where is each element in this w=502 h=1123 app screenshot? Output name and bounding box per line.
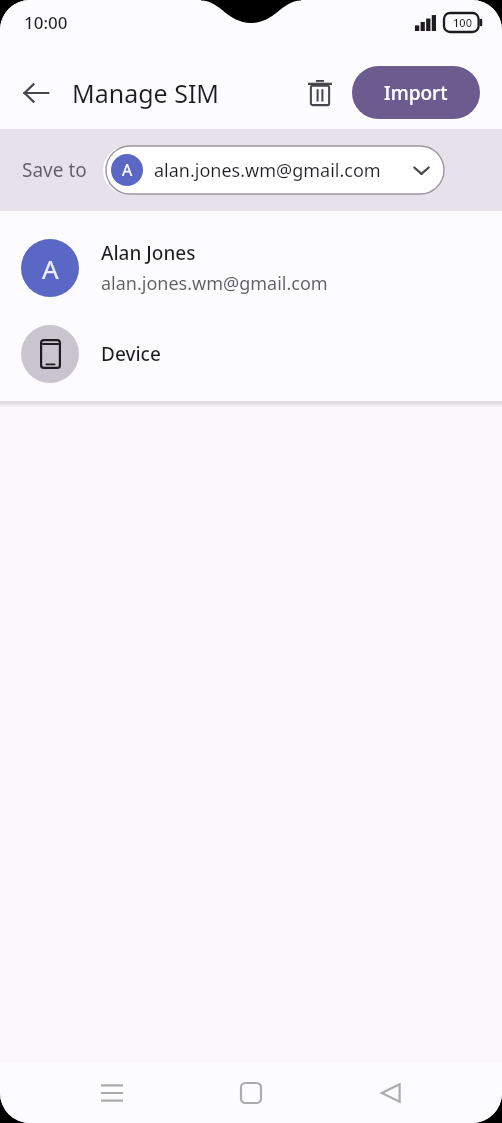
button[interactable]: Delete xyxy=(294,67,346,119)
staticText: Import xyxy=(384,80,448,106)
button[interactable]: Home xyxy=(223,1065,279,1121)
staticText: A xyxy=(42,251,59,286)
staticText: 10:00 xyxy=(24,11,68,34)
staticText: Save to xyxy=(22,157,87,183)
button[interactable]: Import xyxy=(352,66,480,119)
button[interactable]: Back xyxy=(10,67,62,119)
button[interactable]: Recent apps xyxy=(84,1065,140,1121)
button[interactable]: Back xyxy=(363,1065,419,1121)
staticText: Device xyxy=(101,341,161,367)
button[interactable]: A xyxy=(103,146,444,194)
button[interactable]: A xyxy=(0,225,502,311)
button[interactable]: Device xyxy=(0,311,502,397)
staticText: Manage SIM xyxy=(72,76,220,110)
staticText: 100 xyxy=(453,15,472,30)
staticText: alan.jones.wm@gmail.com xyxy=(154,158,381,183)
staticText: Alan Jones xyxy=(101,240,196,266)
staticText: alan.jones.wm@gmail.com xyxy=(101,271,328,296)
staticText: A xyxy=(122,159,133,181)
